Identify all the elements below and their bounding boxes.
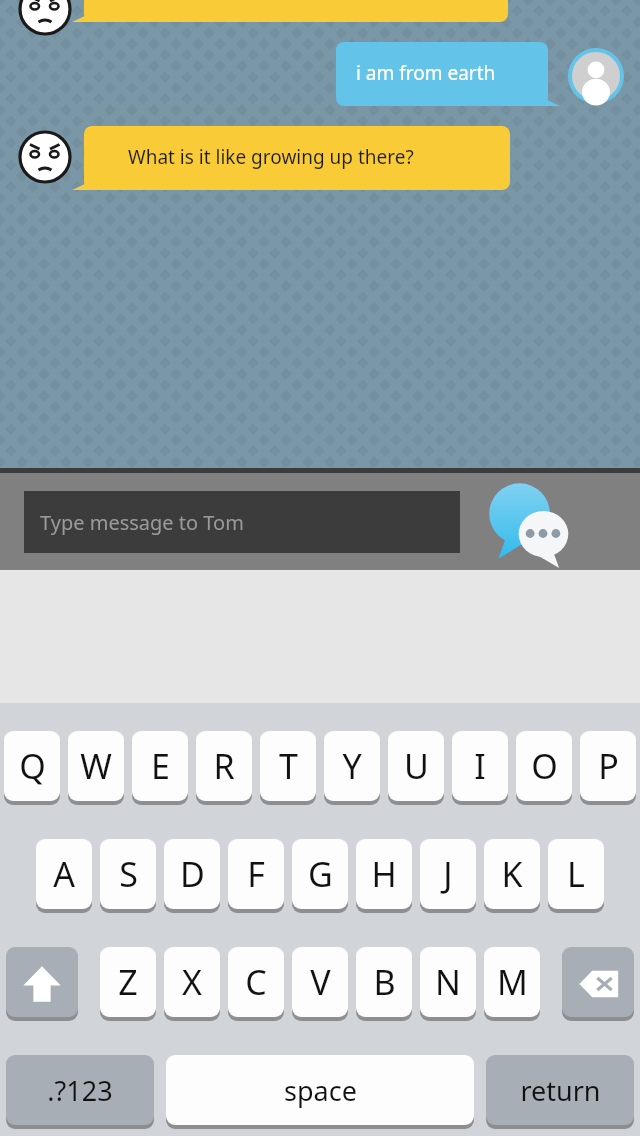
staticText: J — [443, 851, 453, 897]
button[interactable]: .?123 — [6, 1055, 154, 1129]
button[interactable]: H — [356, 839, 412, 913]
staticText: E — [151, 743, 170, 789]
staticText: M — [497, 959, 528, 1005]
staticText: V — [310, 959, 331, 1005]
button[interactable]: S — [100, 839, 156, 913]
button[interactable]: A — [36, 839, 92, 913]
staticText: G — [308, 851, 333, 897]
button[interactable]: L — [548, 839, 604, 913]
staticText: D — [180, 851, 205, 897]
button[interactable]: Send message — [480, 476, 572, 568]
button[interactable]: O — [516, 731, 572, 805]
staticText: O — [531, 743, 558, 789]
staticText: W — [80, 743, 112, 789]
staticText: A — [53, 851, 75, 897]
button[interactable]: return — [486, 1055, 634, 1129]
button[interactable]: N — [420, 947, 476, 1021]
button[interactable]: Shift — [6, 947, 78, 1021]
button[interactable]: Type message to Tom — [24, 491, 460, 553]
staticText: X — [182, 959, 202, 1005]
staticText: L — [567, 851, 585, 897]
staticText: B — [373, 959, 396, 1005]
staticText: Y — [342, 743, 362, 789]
button[interactable]: I — [452, 731, 508, 805]
button[interactable]: P — [580, 731, 636, 805]
staticText: return — [520, 1072, 601, 1109]
button[interactable]: G — [292, 839, 348, 913]
button[interactable]: Your profile picture — [568, 48, 624, 104]
staticText: C — [245, 959, 267, 1005]
button[interactable]: F — [228, 839, 284, 913]
staticText: U — [404, 743, 429, 789]
staticText: H — [371, 851, 397, 897]
staticText: T — [279, 743, 298, 789]
staticText: i am from earth — [356, 60, 496, 86]
staticText: What is it like growing up there? — [128, 144, 414, 170]
staticText: R — [213, 743, 235, 789]
button[interactable]: E — [132, 731, 188, 805]
staticText: I — [474, 743, 486, 789]
button[interactable]: V — [292, 947, 348, 1021]
button[interactable]: K — [484, 839, 540, 913]
staticText: S — [119, 851, 138, 897]
staticText: Z — [118, 959, 138, 1005]
button[interactable]: Z — [100, 947, 156, 1021]
button[interactable]: Backspace — [562, 947, 634, 1021]
staticText: F — [247, 851, 265, 897]
staticText: Type message to Tom — [40, 509, 244, 536]
button[interactable]: U — [388, 731, 444, 805]
button[interactable]: Tom's profile picture — [18, 130, 72, 184]
button[interactable]: J — [420, 839, 476, 913]
staticText: space — [284, 1072, 357, 1109]
button[interactable]: D — [164, 839, 220, 913]
button[interactable]: M — [484, 947, 540, 1021]
button[interactable]: R — [196, 731, 252, 805]
button[interactable]: T — [260, 731, 316, 805]
staticText: K — [501, 851, 523, 897]
button[interactable]: Y — [324, 731, 380, 805]
staticText: .?123 — [47, 1072, 113, 1109]
button[interactable]: C — [228, 947, 284, 1021]
staticText: N — [435, 959, 461, 1005]
button[interactable]: W — [68, 731, 124, 805]
staticText: P — [598, 743, 619, 789]
button[interactable]: space — [166, 1055, 474, 1129]
button[interactable]: B — [356, 947, 412, 1021]
staticText: Q — [19, 743, 46, 789]
button[interactable]: Q — [4, 731, 60, 805]
button[interactable]: X — [164, 947, 220, 1021]
